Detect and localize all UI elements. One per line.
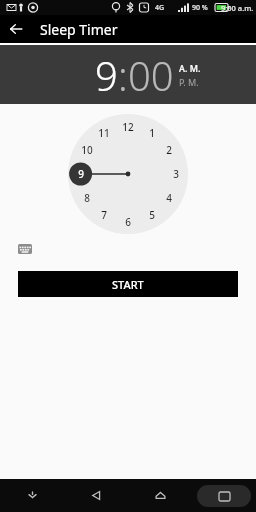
button[interactable]: Home [128,479,192,512]
staticText: 5 [149,208,155,222]
button[interactable]: 9 [95,48,118,102]
staticText: 6 [125,215,131,229]
staticText: 9 [78,167,84,181]
staticText: 7 [101,208,107,222]
staticText: 90 % [192,3,208,13]
staticText: 9:00 a.m. [221,3,254,13]
button[interactable]: A. M. [179,62,201,74]
button[interactable]: Hide keyboard [0,479,64,512]
staticText: START [112,277,144,292]
staticText: 4 [166,191,172,205]
staticText: Sleep Timer [40,20,118,39]
button[interactable]: Back [0,15,32,43]
button[interactable]: Back [64,479,128,512]
button[interactable]: 00 [128,48,174,102]
button[interactable]: Switch to text input mode [14,241,36,257]
button[interactable]: Recent apps [192,479,256,512]
staticText: 4G [155,3,165,13]
staticText: 3 [173,167,179,181]
staticText: 00 [128,48,174,102]
staticText: 2 [166,143,172,157]
button[interactable]: P. M. [179,76,199,88]
staticText: 10 [81,143,93,157]
staticText: 11 [98,126,110,140]
staticText: 8 [84,191,90,205]
staticText: A. M. [179,62,201,74]
staticText: P. M. [179,76,199,88]
button[interactable]: Select hour [68,114,188,234]
button[interactable]: START [18,271,238,297]
staticText: : [118,48,128,102]
staticText: 1 [149,126,155,140]
staticText: 12 [122,120,134,134]
staticText: 9 [95,48,118,102]
